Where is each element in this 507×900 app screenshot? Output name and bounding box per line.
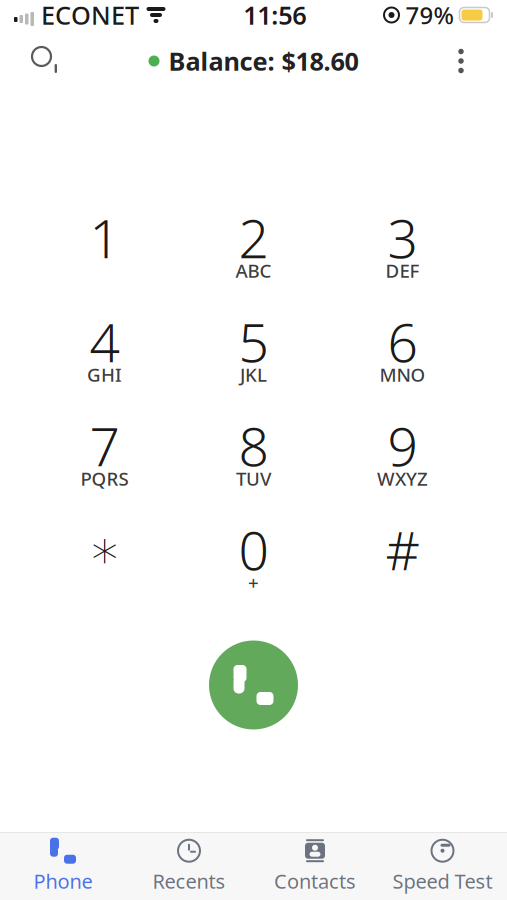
- button[interactable]: 1: [30, 194, 179, 298]
- staticText: +: [248, 570, 259, 595]
- staticText: #: [385, 514, 419, 585]
- button[interactable]: 2: [179, 194, 328, 298]
- staticText: MNO: [379, 362, 425, 387]
- button[interactable]: #: [328, 506, 477, 610]
- button[interactable]: Contacts: [252, 832, 378, 900]
- button[interactable]: 9: [328, 402, 477, 506]
- button[interactable]: Speed Test: [378, 832, 507, 900]
- button[interactable]: Recents: [126, 832, 252, 900]
- staticText: 3: [387, 202, 417, 273]
- button[interactable]: 8: [179, 402, 328, 506]
- staticText: PQRS: [80, 466, 128, 491]
- button[interactable]: More options: [435, 35, 487, 87]
- staticText: ECONET: [41, 0, 139, 32]
- button[interactable]: 3: [328, 194, 477, 298]
- staticText: 1: [89, 202, 119, 273]
- staticText: 79%: [405, 0, 453, 31]
- staticText: ∗: [88, 519, 121, 580]
- staticText: GHI: [87, 362, 122, 387]
- button[interactable]: Phone: [0, 832, 126, 900]
- staticText: 5: [238, 306, 268, 377]
- button[interactable]: Search: [20, 35, 72, 87]
- staticText: 2: [238, 202, 268, 273]
- staticText: 8: [238, 410, 268, 481]
- button[interactable]: 0: [179, 506, 328, 610]
- staticText: JKL: [240, 362, 267, 387]
- staticText: 4: [89, 306, 119, 377]
- staticText: Recents: [152, 868, 225, 894]
- button[interactable]: ∗: [30, 506, 179, 610]
- staticText: 11:56: [243, 0, 306, 32]
- staticText: 6: [387, 306, 417, 377]
- staticText: 9: [387, 410, 417, 481]
- staticText: ABC: [235, 258, 271, 283]
- staticText: Balance: $18.60: [168, 44, 358, 78]
- staticText: DEF: [385, 258, 419, 283]
- button[interactable]: Balance: $18.60: [138, 36, 368, 86]
- button[interactable]: 4: [30, 298, 179, 402]
- button[interactable]: 5: [179, 298, 328, 402]
- staticText: TUV: [236, 466, 271, 491]
- staticText: Speed Test: [392, 868, 492, 894]
- button[interactable]: 6: [328, 298, 477, 402]
- staticText: 0: [238, 514, 268, 585]
- staticText: WXYZ: [377, 466, 428, 491]
- staticText: Contacts: [274, 868, 356, 894]
- staticText: Phone: [33, 868, 92, 894]
- button[interactable]: 7: [30, 402, 179, 506]
- staticText: 7: [89, 410, 119, 481]
- button[interactable]: Call: [209, 640, 298, 729]
